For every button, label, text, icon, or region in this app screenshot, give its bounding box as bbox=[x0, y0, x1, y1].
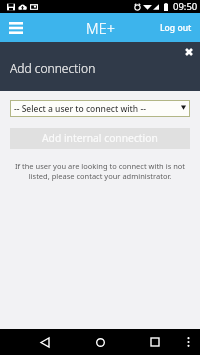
button[interactable]: Recents bbox=[144, 331, 166, 353]
staticText: Log out bbox=[160, 22, 192, 34]
button[interactable]: Log out bbox=[160, 22, 192, 34]
button[interactable]: More options bbox=[180, 334, 196, 350]
staticText: ME+ bbox=[86, 18, 115, 38]
button[interactable]: -- Select a user to connect with -- bbox=[10, 100, 190, 117]
button[interactable]: Close bbox=[181, 44, 196, 59]
button[interactable]: Home bbox=[89, 331, 111, 353]
button[interactable]: Add internal connection bbox=[10, 128, 190, 149]
staticText: If the user you are looking to connect w… bbox=[5, 161, 195, 181]
button[interactable]: Menu bbox=[5, 17, 27, 39]
staticText: -- Select a user to connect with -- bbox=[14, 103, 146, 115]
staticText: Add connection bbox=[10, 60, 96, 76]
staticText: 09:50 bbox=[173, 0, 198, 13]
staticText: Add internal connection bbox=[42, 131, 158, 145]
button[interactable]: Back bbox=[34, 331, 56, 353]
